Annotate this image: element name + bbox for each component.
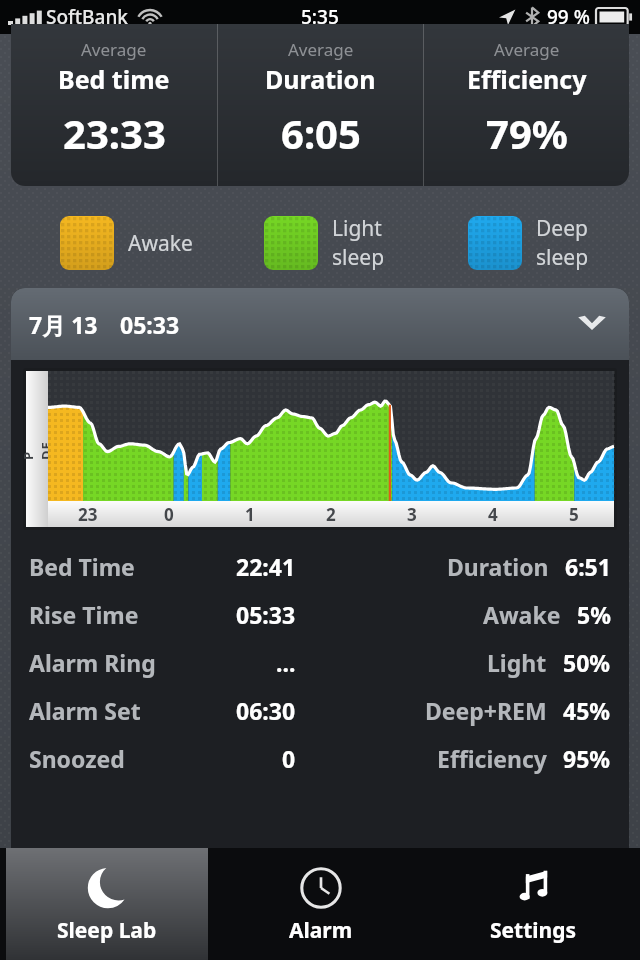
button[interactable]: Awake [14,216,218,270]
staticText: Efficiency [437,743,547,774]
staticText: Light [332,214,382,243]
staticText: 95% [563,743,611,774]
staticText: 7月 13 [29,309,98,340]
button[interactable]: Rise Time [29,590,611,638]
staticText: Bed Time [29,551,135,582]
staticText: Settings [490,916,577,945]
staticText: 23:33 [63,106,166,160]
staticText: SoftBank [46,4,128,30]
staticText: 4 [488,503,498,526]
staticText: 5:35 [301,4,339,30]
staticText: 0 [164,503,174,526]
staticText: SLEEP DEPTH [23,438,91,460]
button[interactable]: Snoozed [29,734,611,782]
staticText: Average [494,38,560,61]
button[interactable]: Alarm Set [29,686,611,734]
staticText: Bed time [58,62,170,96]
staticText: Alarm [289,916,353,945]
staticText: 99 % [547,4,590,30]
button[interactable]: Average [218,24,423,186]
staticText: 5% [577,599,611,630]
staticText: 6:51 [565,551,611,582]
staticText: 50% [563,647,611,678]
staticText: 79% [486,106,568,160]
staticText: Efficiency [467,62,587,96]
other: Sleep Lab [83,864,131,912]
other: Alarm [297,864,345,912]
staticText: Rise Time [29,599,139,630]
staticText: ... [276,647,296,678]
staticText: 06:30 [236,695,296,726]
staticText: 45% [563,695,611,726]
button[interactable]: Light [218,214,422,272]
staticText: 05:33 [120,309,180,340]
staticText: Duration [265,62,376,96]
staticText: sleep [332,243,385,272]
staticText: Duration [447,551,549,582]
staticText: 22:41 [236,551,296,582]
staticText: Alarm Set [29,695,141,726]
other: Settings [510,864,558,912]
staticText: Deep [536,214,588,243]
staticText: Alarm Ring [29,647,156,678]
button[interactable]: Deep [422,214,626,272]
staticText: 1 [245,503,255,526]
staticText: Average [81,38,147,61]
other: Collapse [577,315,607,333]
staticText: sleep [536,243,589,272]
button[interactable]: Average [424,24,629,186]
staticText: Average [288,38,354,61]
button[interactable]: SLEEP DEPTH [26,371,614,527]
button[interactable]: Alarm Ring [29,638,611,686]
button[interactable]: Settings [433,848,634,960]
staticText: Light [487,647,547,678]
staticText: Snoozed [29,743,125,774]
staticText: 6:05 [281,106,361,160]
button[interactable]: Sleep Lab [6,848,208,960]
button[interactable]: Bed Time [29,542,611,590]
staticText: Awake [128,229,193,258]
staticText: 2 [326,503,336,526]
staticText: 23 [78,503,98,526]
staticText: Sleep Lab [57,916,157,945]
staticText: 5 [569,503,579,526]
button[interactable]: 7月 13 [11,288,629,360]
staticText: 05:33 [236,599,296,630]
button[interactable]: Average [11,24,217,186]
staticText: 0 [282,743,296,774]
staticText: Deep+REM [425,695,547,726]
staticText: 3 [407,503,417,526]
button[interactable]: Alarm [220,848,421,960]
staticText: Awake [483,599,561,630]
